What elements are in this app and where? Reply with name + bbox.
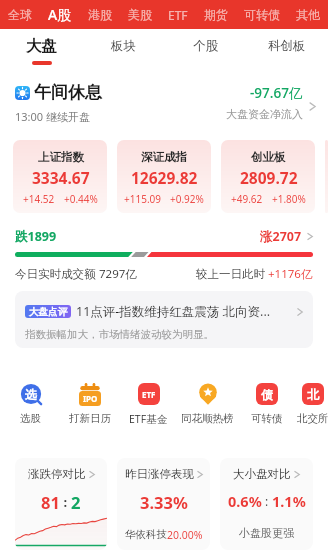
staticText: 北 <box>307 387 319 402</box>
staticText: 7297亿 <box>99 266 137 282</box>
staticText: 小盘股更强 <box>239 526 294 540</box>
staticText: 北交所 <box>297 412 328 425</box>
staticText: 3334.67 <box>32 167 90 188</box>
staticText: 可转债 <box>251 412 283 425</box>
staticText: 期货 <box>204 7 228 22</box>
staticText: 大盘点评 <box>29 306 67 318</box>
button[interactable]: 美股 <box>125 0 155 29</box>
staticText: 大盘 <box>26 36 57 56</box>
button[interactable]: 其他 <box>293 0 323 29</box>
staticText: +49.62 <box>231 192 263 206</box>
staticText: -97.67亿 <box>250 84 303 102</box>
button[interactable]: 昨日涨停表现 <box>117 458 210 550</box>
button[interactable]: 可转债 <box>241 0 283 29</box>
button[interactable]: 深证成指 <box>117 140 211 213</box>
staticText: 3.33% <box>140 491 188 513</box>
staticText: +0.92% <box>170 192 204 206</box>
staticText: 可转债 <box>244 7 280 22</box>
staticText: +14.52 <box>23 192 55 206</box>
button[interactable]: 午间休息 <box>0 82 328 124</box>
staticText: 昨日涨停表现 <box>125 467 194 481</box>
staticText: 个股 <box>193 38 218 54</box>
staticText: ETF基金 <box>129 412 168 426</box>
button[interactable]: IPO <box>60 364 119 440</box>
staticText: 1.1% <box>272 491 306 511</box>
staticText: +1.80% <box>272 192 306 206</box>
staticText: 2 <box>71 491 81 513</box>
staticText: 20.00% <box>167 528 203 542</box>
button[interactable]: 大盘点评 <box>15 291 313 348</box>
staticText: ETF <box>142 389 156 400</box>
staticText: 同花顺热榜 <box>181 412 234 425</box>
staticText: +0.44% <box>64 192 98 206</box>
staticText: 选股 <box>20 412 41 425</box>
staticText: 涨跌停对比 <box>28 467 86 481</box>
button[interactable]: 同花顺热榜 <box>178 364 237 440</box>
button[interactable]: ETF <box>165 0 191 29</box>
staticText: IPO <box>83 393 98 404</box>
staticText: 涨2707 <box>260 228 302 245</box>
staticText: 债 <box>261 387 273 402</box>
staticText: A股 <box>48 5 72 24</box>
button[interactable]: 大小盘对比 <box>220 458 313 550</box>
staticText: ETF <box>168 7 188 23</box>
staticText: +1176亿 <box>268 266 313 282</box>
staticText: 深证成指 <box>141 150 187 164</box>
button[interactable]: A股 <box>45 0 75 29</box>
staticText: 跌1899 <box>15 228 57 245</box>
button[interactable]: 期货 <box>201 0 231 29</box>
button[interactable]: 港股 <box>85 0 115 29</box>
staticText: 美股 <box>128 7 152 22</box>
button[interactable]: 北 <box>296 364 328 440</box>
staticText: 午间休息 <box>34 82 102 103</box>
button[interactable]: 跌1899 <box>0 228 328 257</box>
button[interactable]: 选 <box>1 364 60 440</box>
staticText: : <box>262 493 272 509</box>
staticText: 13:00 继续开盘 <box>15 109 90 124</box>
button[interactable]: 大盘 <box>0 29 82 70</box>
staticText: 12629.82 <box>131 167 198 188</box>
button[interactable]: 个股 <box>164 29 246 70</box>
staticText: 科创板 <box>268 38 306 54</box>
button[interactable]: 科创板 <box>246 29 328 70</box>
staticText: 选 <box>25 387 37 402</box>
staticText: 打新日历 <box>69 412 111 425</box>
staticText: 大小盘对比 <box>233 467 291 481</box>
staticText: 2809.72 <box>240 167 298 188</box>
button[interactable]: 上证指数 <box>13 140 107 213</box>
staticText: 创业板 <box>251 150 286 164</box>
staticText: 港股 <box>88 7 112 22</box>
button[interactable]: 板块 <box>82 29 164 70</box>
staticText: 81 <box>41 491 60 513</box>
staticText: 华依科技 <box>125 528 167 541</box>
button[interactable]: ETF <box>119 364 178 440</box>
button[interactable]: 债 <box>237 364 296 440</box>
staticText: 其他 <box>296 7 320 22</box>
staticText: +115.09 <box>124 192 161 206</box>
staticText: 指数振幅加大，市场情绪波动较为明显。 <box>25 328 214 341</box>
button[interactable]: 涨跌停对比 <box>15 458 107 550</box>
staticText: 大盘资金净流入 <box>226 107 303 121</box>
button[interactable]: 全球 <box>5 0 35 29</box>
staticText: 板块 <box>111 38 136 54</box>
staticText: 较上一日此时 <box>196 266 268 282</box>
staticText: : <box>60 493 71 511</box>
staticText: 全球 <box>8 7 32 22</box>
button[interactable]: 创业板 <box>221 140 315 213</box>
staticText: 0.6% <box>228 491 262 511</box>
staticText: 今日实时成交额 <box>15 266 99 282</box>
staticText: 上证指数 <box>38 150 84 164</box>
staticText: 11点评-指数维持红盘震荡 北向资... <box>76 303 297 320</box>
